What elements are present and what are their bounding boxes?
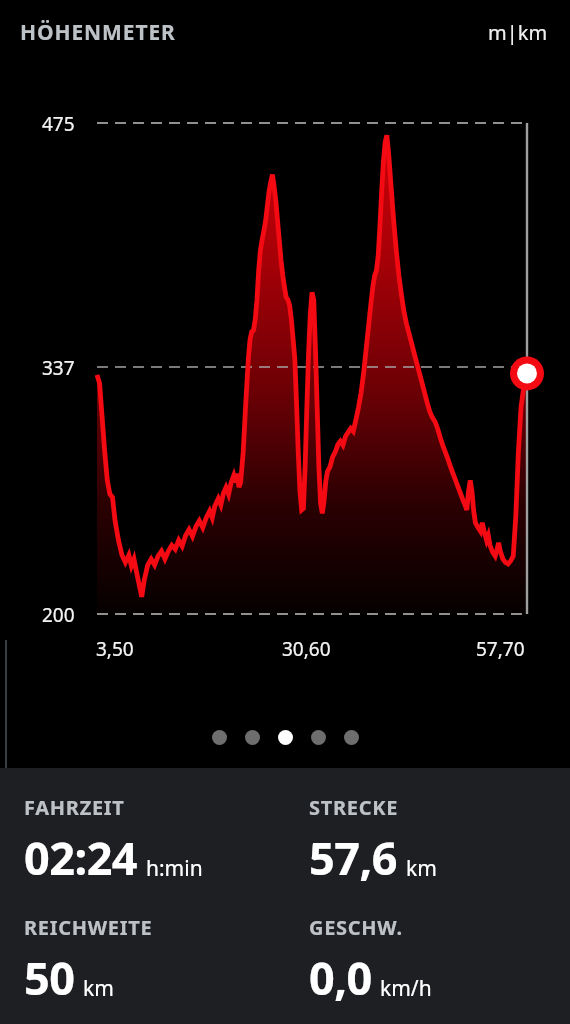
staticText: FAHRZEIT — [24, 794, 125, 821]
button[interactable]: Page 5 of 5 — [344, 730, 359, 745]
button[interactable]: Page 1 of 5 — [212, 730, 227, 745]
button[interactable]: STRECKE — [309, 794, 570, 888]
staticText: km/h — [380, 974, 432, 1003]
button[interactable]: GESCHW. — [309, 914, 570, 1008]
staticText: HÖHENMETER — [20, 18, 176, 47]
staticText: 200 — [42, 602, 75, 628]
staticText: REICHWEITE — [24, 914, 153, 941]
button[interactable]: Unit toggle meters per kilometer — [488, 19, 548, 46]
button[interactable]: Page 3 of 5 — [278, 730, 293, 745]
staticText: 475 — [42, 111, 75, 137]
button[interactable]: Page 4 of 5 — [311, 730, 326, 745]
staticText: 3,50 — [96, 636, 134, 662]
staticText: 50 — [24, 947, 75, 1008]
staticText: km — [406, 854, 437, 883]
staticText: 57,6 — [309, 827, 398, 888]
staticText: GESCHW. — [309, 914, 403, 941]
staticText: 0,0 — [309, 947, 372, 1008]
staticText: 30,60 — [282, 636, 331, 662]
staticText: km — [83, 974, 114, 1003]
staticText: 02:24 — [24, 827, 138, 888]
button[interactable]: REICHWEITE — [24, 914, 285, 1008]
staticText: STRECKE — [309, 794, 399, 821]
staticText: h:min — [146, 854, 203, 883]
button[interactable]: FAHRZEIT — [24, 794, 285, 888]
button[interactable]: Page 2 of 5 — [245, 730, 260, 745]
staticText: m|km — [488, 19, 548, 46]
staticText: 337 — [42, 355, 75, 381]
staticText: 57,70 — [476, 636, 525, 662]
